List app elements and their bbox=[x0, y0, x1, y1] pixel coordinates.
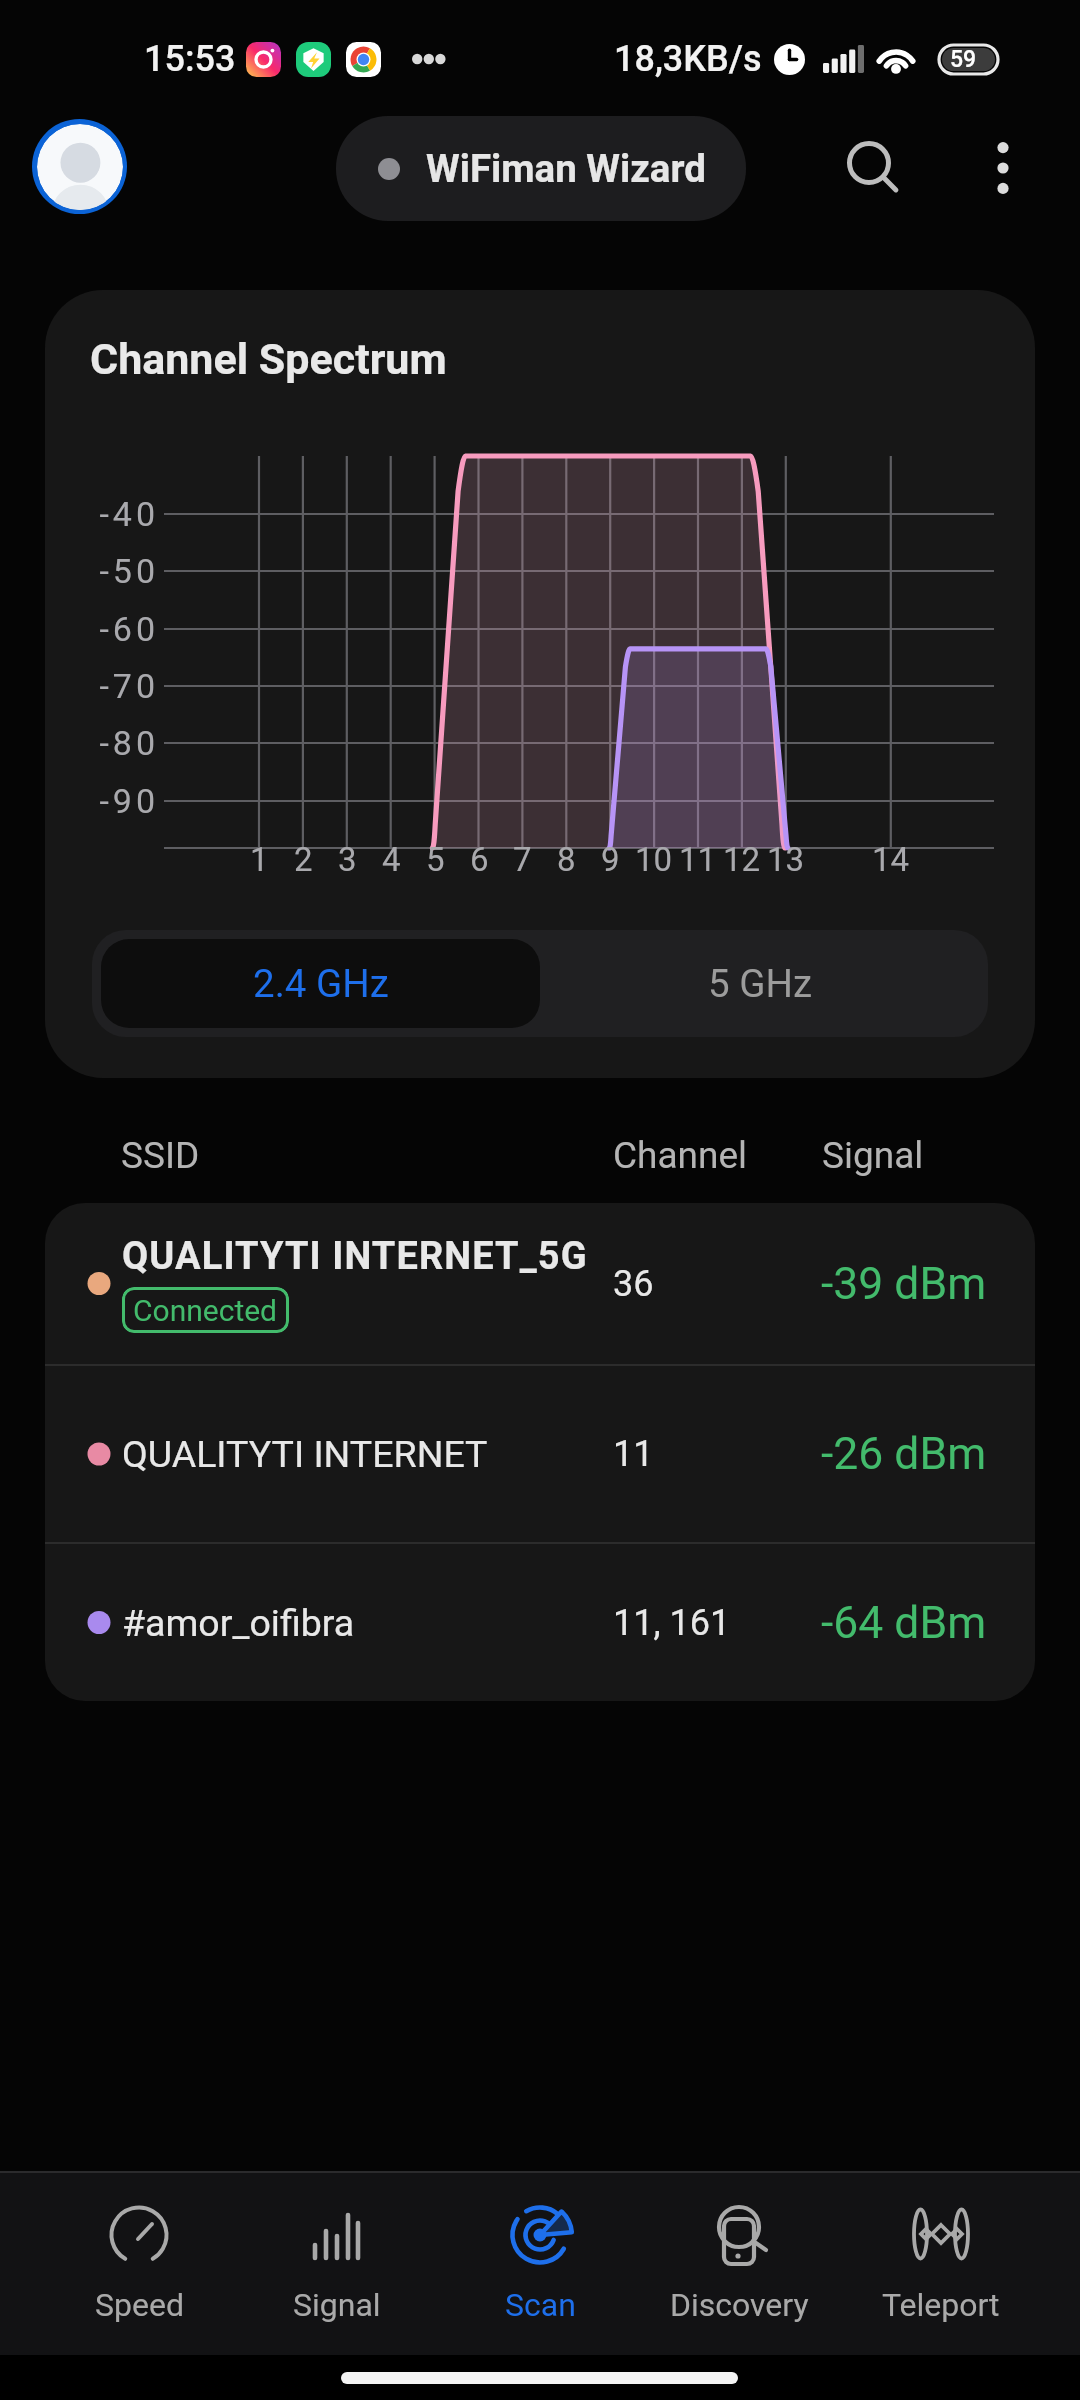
button[interactable]: Signal bbox=[237, 2171, 437, 2355]
button[interactable]: QUALITYTI INTERNET_5G bbox=[45, 1203, 1035, 1364]
button[interactable]: 5 GHz bbox=[540, 939, 979, 1028]
staticText: -80 bbox=[99, 723, 159, 763]
staticText: Channel Spectrum bbox=[90, 334, 447, 384]
staticText: Connected bbox=[133, 1293, 278, 1328]
staticText: 59 bbox=[950, 46, 977, 73]
staticText: Speed bbox=[95, 2286, 184, 2324]
staticText: 4 bbox=[382, 840, 401, 879]
staticText: -40 bbox=[99, 494, 159, 534]
staticText: 8 bbox=[557, 840, 576, 879]
staticText: SSID bbox=[121, 1134, 200, 1177]
staticText: 7 bbox=[513, 840, 532, 879]
staticText: 36 bbox=[613, 1263, 654, 1305]
staticText: Signal bbox=[293, 2286, 381, 2324]
button[interactable]: WiFiman Wizard bbox=[336, 116, 746, 221]
staticText: -39 dBm bbox=[821, 1258, 987, 1310]
button[interactable]: #amor_oifibra bbox=[45, 1544, 1035, 1701]
staticText: QUALITYTI INTERNET bbox=[122, 1432, 488, 1476]
staticText: Teleport bbox=[882, 2286, 1000, 2324]
staticText: 3 bbox=[338, 840, 357, 879]
staticText: Discovery bbox=[670, 2286, 809, 2324]
staticText: -90 bbox=[99, 781, 159, 821]
staticText: -26 dBm bbox=[821, 1428, 987, 1480]
staticText: 11, 161 bbox=[613, 1602, 731, 1644]
button[interactable]: More options bbox=[957, 122, 1049, 214]
staticText: 5 GHz bbox=[708, 961, 812, 1006]
staticText: Channel bbox=[613, 1134, 748, 1177]
staticText: #amor_oifibra bbox=[122, 1601, 355, 1645]
staticText: 14 bbox=[872, 840, 910, 879]
button[interactable]: QUALITYTI INTERNET bbox=[45, 1366, 1035, 1542]
staticText: -70 bbox=[99, 666, 159, 706]
staticText: -50 bbox=[99, 551, 159, 591]
staticText: WiFiman Wizard bbox=[426, 146, 706, 191]
staticText: 6 bbox=[470, 840, 489, 879]
staticText: 11 bbox=[679, 840, 717, 879]
staticText: QUALITYTI INTERNET_5G bbox=[122, 1234, 588, 1279]
staticText: Scan bbox=[505, 2286, 576, 2324]
button[interactable]: Teleport bbox=[841, 2171, 1041, 2355]
button[interactable]: Search bbox=[824, 117, 930, 223]
staticText: 10 bbox=[635, 840, 673, 879]
staticText: 11 bbox=[613, 1433, 654, 1475]
staticText: 5 bbox=[426, 840, 445, 879]
staticText: -60 bbox=[99, 609, 159, 649]
button[interactable]: Profile bbox=[32, 119, 127, 214]
button[interactable]: Discovery bbox=[639, 2171, 839, 2355]
staticText: 13 bbox=[767, 840, 805, 879]
staticText: 9 bbox=[601, 840, 620, 879]
button[interactable]: Scan bbox=[440, 2171, 640, 2355]
staticText: 18,3KB/s bbox=[614, 38, 762, 80]
staticText: 1 bbox=[250, 840, 269, 879]
staticText: 2.4 GHz bbox=[253, 961, 389, 1006]
staticText: 12 bbox=[723, 840, 761, 879]
staticText: -64 dBm bbox=[821, 1597, 987, 1649]
staticText: 15:53 bbox=[144, 38, 236, 80]
staticText: Signal bbox=[822, 1134, 924, 1177]
button[interactable]: Speed bbox=[39, 2171, 239, 2355]
staticText: 2 bbox=[294, 840, 313, 879]
button[interactable]: 2.4 GHz bbox=[101, 939, 540, 1028]
